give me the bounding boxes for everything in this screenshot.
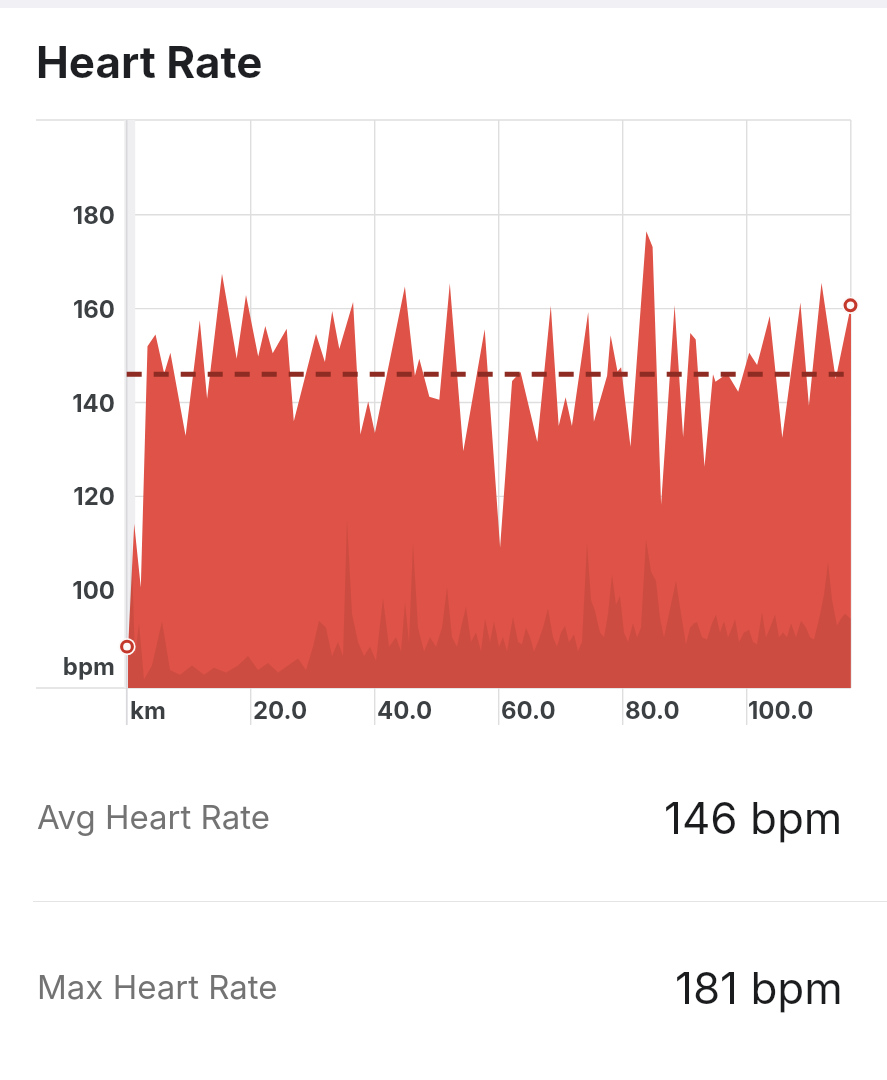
- staticText: 180: [0, 201, 115, 230]
- staticText: 80.0: [625, 696, 680, 725]
- staticText: 100.0: [748, 696, 814, 725]
- staticText: 100: [0, 576, 115, 605]
- button[interactable]: Avg Heart Rate: [0, 747, 887, 887]
- staticText: Max Heart Rate: [37, 967, 278, 1007]
- staticText: 140: [0, 389, 115, 418]
- staticText: 120: [0, 482, 115, 511]
- staticText: 160: [0, 295, 115, 324]
- staticText: 40.0: [377, 696, 433, 725]
- staticText: 20.0: [253, 696, 308, 725]
- staticText: Heart Rate: [36, 35, 263, 88]
- button[interactable]: Max Heart Rate: [0, 917, 887, 1057]
- staticText: Avg Heart Rate: [37, 797, 270, 837]
- staticText: 146 bpm: [664, 791, 843, 844]
- button[interactable]: Heart rate chart over distance: [36, 110, 851, 730]
- staticText: 60.0: [501, 696, 556, 725]
- staticText: bpm: [0, 652, 115, 681]
- staticText: 181 bpm: [675, 961, 843, 1014]
- staticText: km: [130, 696, 166, 725]
